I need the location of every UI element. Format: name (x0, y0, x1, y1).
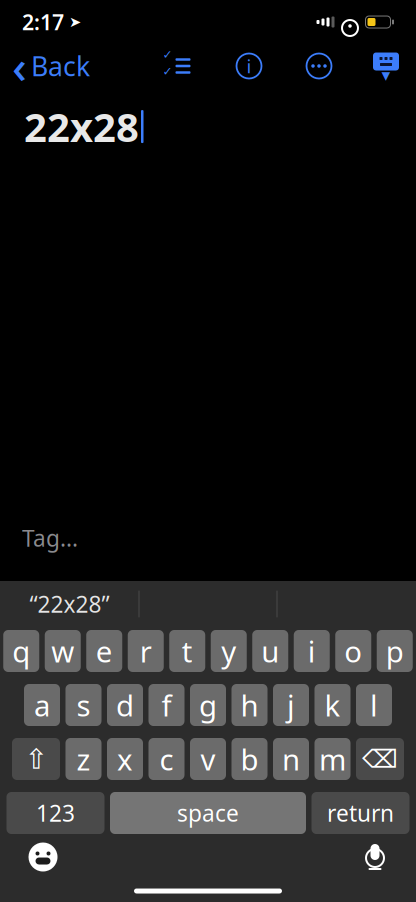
staticText: ➤ (64, 14, 81, 30)
staticText: c (159, 739, 173, 778)
staticText: f (161, 685, 171, 724)
staticText: a (34, 685, 50, 724)
button[interactable]: t (169, 630, 205, 672)
staticText: q (12, 631, 30, 670)
staticText: d (116, 685, 134, 724)
staticText: s (76, 685, 90, 724)
staticText: “22x28” (29, 589, 109, 619)
button[interactable]: p (377, 630, 413, 672)
button[interactable]: k (314, 684, 350, 726)
staticText: ⇧ (24, 743, 47, 775)
button[interactable]: v (190, 738, 226, 780)
button[interactable]: i (294, 630, 330, 672)
button[interactable]: return (311, 792, 409, 834)
button[interactable]: Emoji (28, 836, 58, 878)
staticText: z (76, 739, 90, 778)
staticText: i (308, 631, 316, 670)
button[interactable]: “22x28” (0, 581, 138, 627)
staticText: l (370, 685, 378, 724)
button[interactable]: More options (298, 47, 340, 85)
button[interactable]: r (128, 630, 164, 672)
staticText: Back (31, 48, 90, 84)
staticText: k (324, 685, 340, 724)
button[interactable]: w (45, 630, 81, 672)
button[interactable]: Checklist (154, 49, 200, 83)
staticText: g (199, 685, 217, 724)
staticText: ⌫ (362, 745, 398, 773)
button[interactable]: ‹ (0, 32, 90, 100)
staticText: u (261, 631, 279, 670)
button[interactable]: Shift (12, 738, 60, 780)
button[interactable]: q (3, 630, 39, 672)
button[interactable]: Dictation (364, 836, 386, 878)
staticText: j (287, 685, 295, 724)
button[interactable]: d (107, 684, 143, 726)
staticText: space (177, 798, 239, 828)
button[interactable]: j (273, 684, 309, 726)
button[interactable]: Info (228, 47, 270, 85)
staticText: 2:17 (22, 8, 64, 36)
staticText: i (246, 54, 251, 78)
staticText: ✓ (162, 64, 172, 78)
staticText: m (319, 739, 346, 778)
button[interactable]: y (211, 630, 247, 672)
staticText: return (327, 798, 394, 828)
button[interactable]: m (314, 738, 350, 780)
staticText: r (140, 631, 152, 670)
staticText: o (344, 631, 362, 670)
button[interactable]: n (273, 738, 309, 780)
staticText: p (386, 631, 404, 670)
staticText: y (221, 631, 236, 670)
button[interactable]: u (252, 630, 288, 672)
staticText: ‹ (12, 36, 27, 96)
button[interactable]: f (148, 684, 184, 726)
button[interactable]: e (86, 630, 122, 672)
button[interactable]: l (356, 684, 392, 726)
staticText: b (240, 739, 258, 778)
staticText: w (51, 631, 74, 670)
button[interactable]: space (110, 792, 306, 834)
button[interactable]: s (65, 684, 101, 726)
button[interactable]: b (231, 738, 267, 780)
staticText: e (96, 631, 113, 670)
button[interactable]: c (148, 738, 184, 780)
staticText: ▾ (381, 65, 390, 85)
staticText: n (282, 739, 300, 778)
staticText: t (182, 631, 193, 670)
staticText: v (200, 739, 215, 778)
button[interactable]: a (24, 684, 60, 726)
button[interactable]: Hide Keyboard (364, 49, 408, 82)
button[interactable]: z (65, 738, 101, 780)
button[interactable]: h (231, 684, 267, 726)
staticText: Tag... (22, 523, 78, 553)
staticText: 123 (36, 798, 75, 828)
staticText: h (240, 685, 258, 724)
staticText: x (117, 739, 133, 778)
button[interactable]: g (190, 684, 226, 726)
button[interactable]: o (335, 630, 371, 672)
button[interactable]: 123 (6, 792, 104, 834)
staticText: ✓ (162, 48, 172, 61)
staticText: 22x28 (24, 100, 139, 153)
button[interactable]: Delete (356, 738, 404, 780)
button[interactable]: x (107, 738, 143, 780)
